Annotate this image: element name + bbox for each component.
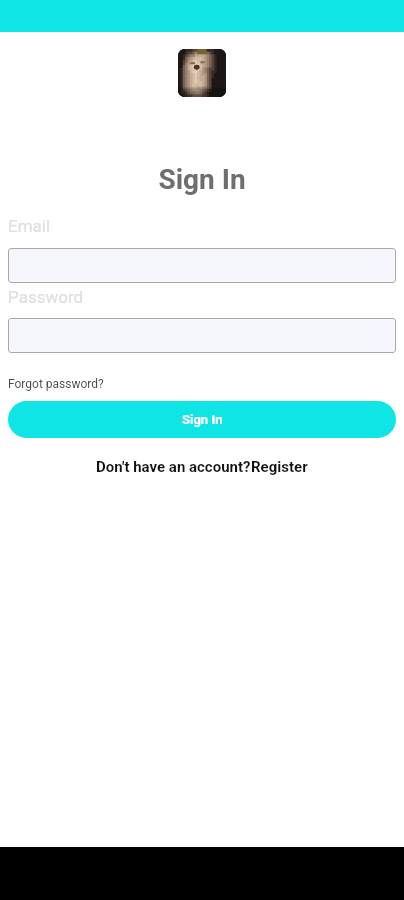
button[interactable]: Password input field [8, 318, 396, 353]
button[interactable]: Email input field [8, 248, 396, 283]
button[interactable]: Forgot password? [8, 377, 104, 391]
staticText: Password [8, 287, 84, 307]
button[interactable]: Register [251, 458, 308, 476]
staticText: Sign In [0, 163, 404, 196]
button[interactable]: Sign In [8, 401, 396, 438]
other: App logo [178, 49, 226, 97]
staticText: Don't have an account? [96, 458, 251, 476]
staticText: Email [8, 216, 51, 236]
staticText: Sign In [182, 412, 223, 427]
